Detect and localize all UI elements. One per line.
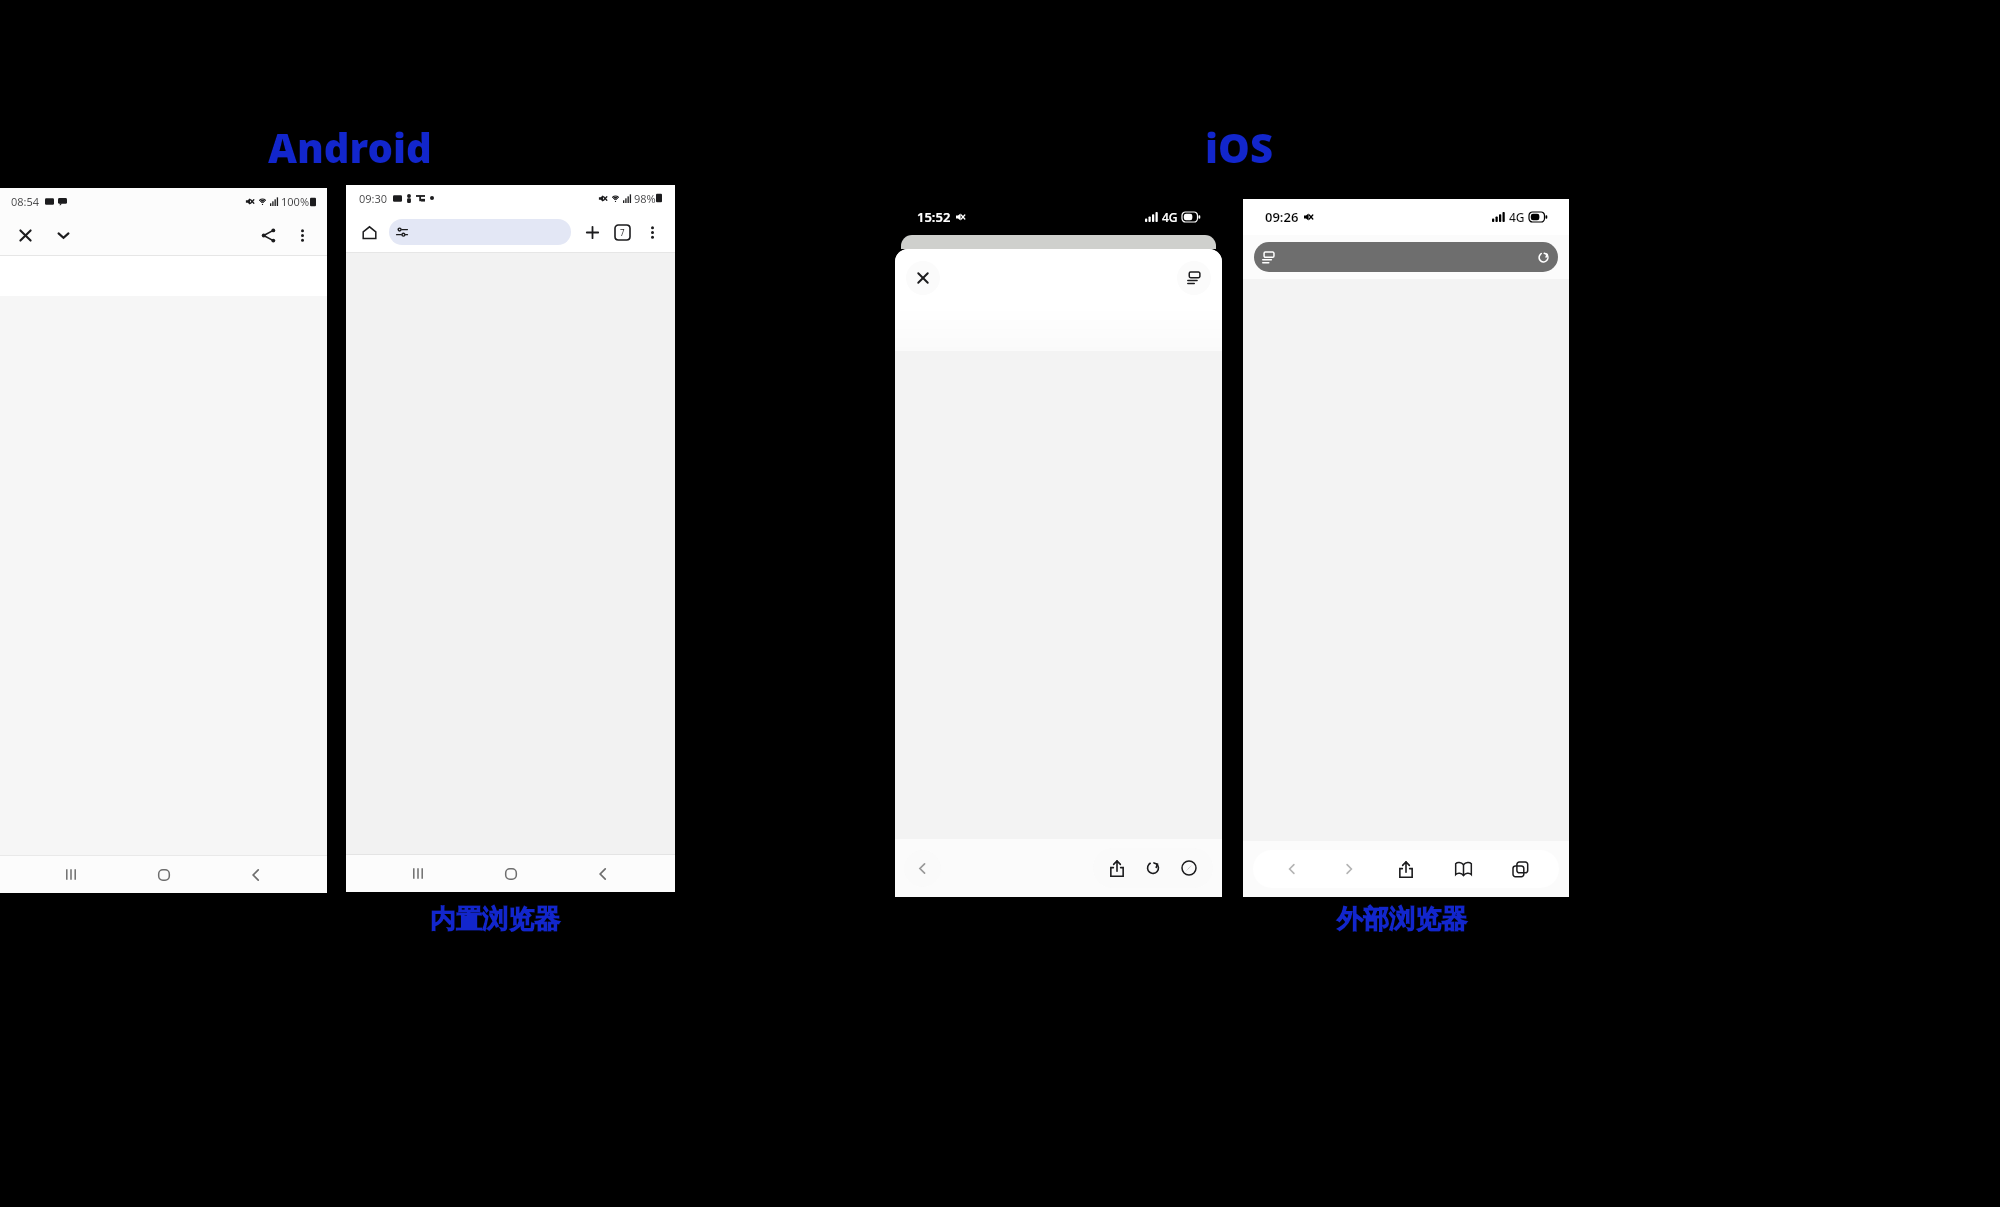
staticText: iOS: [1205, 120, 1365, 174]
button[interactable]: Back: [904, 850, 941, 887]
button[interactable]: Home: [143, 856, 185, 893]
staticText: 4G: [1162, 209, 1178, 225]
staticText: Android: [268, 120, 468, 174]
staticText: 4G: [1509, 209, 1525, 225]
staticText: 100%: [281, 194, 310, 209]
button[interactable]: Back: [1274, 851, 1310, 887]
button[interactable]: Recents: [50, 856, 92, 893]
staticText: 09:30: [359, 191, 388, 206]
button[interactable]: 7: [611, 221, 633, 243]
button[interactable]: Share: [1388, 851, 1424, 887]
button[interactable]: Close: [906, 261, 940, 295]
staticText: 7: [620, 227, 625, 238]
button[interactable]: Collapse: [50, 222, 76, 248]
button[interactable]: Share: [255, 222, 281, 248]
button[interactable]: Open in Safari: [1171, 850, 1207, 886]
staticText: 98%: [634, 191, 656, 206]
button[interactable]: Share: [1099, 850, 1135, 886]
staticText: 08:54: [11, 194, 40, 209]
button[interactable]: Back: [582, 855, 624, 892]
button[interactable]: Tabs: [1502, 851, 1538, 887]
button[interactable]: New tab: [579, 219, 605, 245]
button[interactable]: Close: [12, 222, 38, 248]
staticText: 外部浏览器: [1337, 903, 1537, 936]
button[interactable]: Home: [356, 219, 382, 245]
button[interactable]: More options: [289, 222, 315, 248]
button[interactable]: Recents: [397, 855, 439, 892]
button[interactable]: Forward: [1331, 851, 1367, 887]
staticText: 15:52: [917, 208, 951, 226]
staticText: 09:26: [1265, 208, 1299, 226]
button[interactable]: [389, 219, 571, 245]
button[interactable]: Home: [490, 855, 532, 892]
button[interactable]: More options: [639, 219, 665, 245]
button[interactable]: Back: [235, 856, 277, 893]
button[interactable]: Bookmarks: [1445, 851, 1481, 887]
staticText: 内置浏览器: [430, 903, 630, 936]
button[interactable]: [1254, 242, 1558, 272]
button[interactable]: Reader view: [1177, 261, 1211, 295]
button[interactable]: Reload: [1135, 850, 1171, 886]
